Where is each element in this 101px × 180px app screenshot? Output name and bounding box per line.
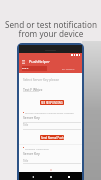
button[interactable]: Open navigation menu: [20, 57, 27, 66]
button[interactable]: BULK NOTIFICATIONS: [22, 66, 47, 71]
staticText: Test F Whizz: [23, 87, 43, 92]
staticText: BULK NOTIFICATIONS: [22, 66, 47, 71]
staticText: Title: [23, 159, 29, 163]
staticText: Set the Notification Channel when change…: [25, 111, 74, 114]
button[interactable]: Home: [48, 174, 53, 179]
staticText: Schedule Notification: [25, 147, 49, 150]
button[interactable]: Back: [30, 174, 35, 179]
staticText: Send or test notification from your devi…: [5, 19, 97, 39]
staticText: Send Normal Push: [41, 136, 64, 140]
staticText: BY TOPICS: [62, 67, 75, 70]
button[interactable]: Recent apps: [66, 174, 71, 179]
staticText: Select Server Key please: [23, 78, 59, 82]
staticText: Server Key: [23, 151, 40, 156]
staticText: Title: [23, 123, 29, 127]
staticText: SEE RESPONDING: [41, 101, 63, 105]
button[interactable]: BY TOPICS: [57, 66, 80, 71]
button[interactable]: Send Normal Push: [40, 135, 64, 140]
staticText: Server Key: [23, 115, 40, 120]
staticText: PushHelper: [29, 59, 50, 64]
button[interactable]: SEE RESPONDING: [40, 100, 64, 105]
